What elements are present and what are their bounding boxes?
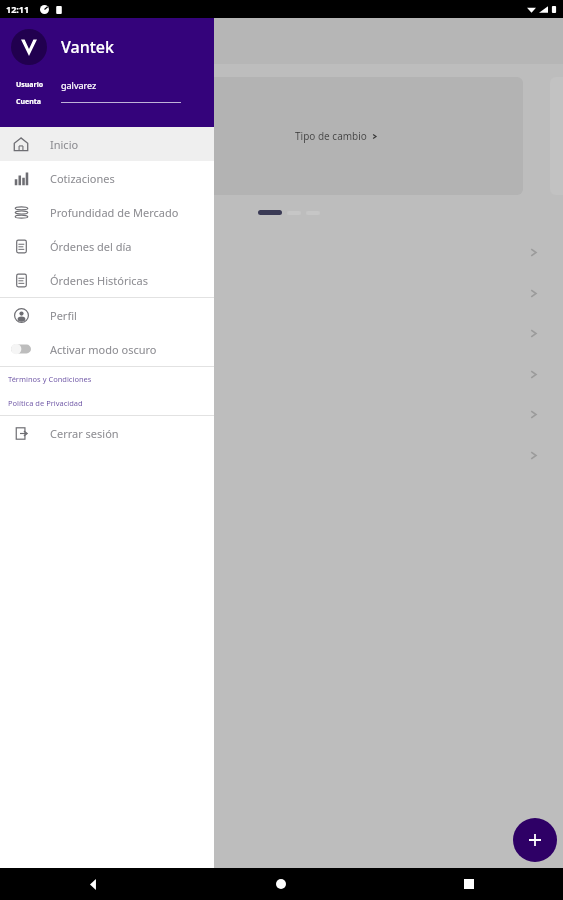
button[interactable]: Inicio — [0, 127, 214, 161]
button[interactable]: Back — [0, 868, 187, 900]
staticText: Cerrar sesión — [50, 426, 119, 441]
staticText: Inicio — [50, 137, 79, 152]
staticText: Órdenes del día — [50, 239, 132, 254]
button[interactable]: Órdenes del día — [0, 229, 214, 263]
staticText: Política de Privacidad — [8, 398, 83, 408]
staticText: Tipo de cambio — [295, 129, 367, 143]
staticText: Perfil — [50, 308, 77, 323]
button[interactable]: Home — [187, 868, 375, 900]
button[interactable]: Política de Privacidad — [0, 391, 214, 415]
staticText: Órdenes Históricas — [50, 273, 148, 288]
staticText: Usuario — [16, 80, 61, 90]
staticText: galvarez — [61, 79, 97, 91]
button[interactable]: Recent apps — [375, 868, 563, 900]
button[interactable]: Activar modo oscuro — [0, 332, 214, 366]
staticText: Profundidad de Mercado — [50, 205, 179, 220]
staticText: Cotizaciones — [50, 171, 115, 186]
button[interactable]: Tipo de cambio — [150, 77, 523, 195]
button[interactable]: Agregar — [513, 818, 557, 862]
button[interactable]: Perfil — [0, 298, 214, 332]
button[interactable]: Órdenes Históricas — [0, 263, 214, 297]
staticText: Activar modo oscuro — [50, 342, 157, 357]
staticText: 12:11 — [6, 3, 30, 15]
button[interactable]: Cotizaciones — [0, 161, 214, 195]
staticText: Vantek — [61, 36, 114, 58]
button[interactable]: Cerrar sesión — [0, 416, 214, 450]
button[interactable]: Términos y Condiciones — [0, 367, 214, 391]
button[interactable]: Profundidad de Mercado — [0, 195, 214, 229]
staticText: Términos y Condiciones — [8, 374, 92, 384]
staticText: Cuenta — [16, 97, 61, 107]
